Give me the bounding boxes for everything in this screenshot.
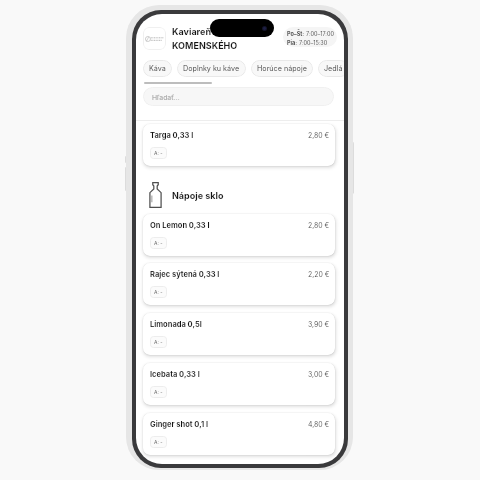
staticText: 3,00 € [308, 370, 330, 378]
button[interactable]: Káva [143, 60, 172, 77]
button[interactable]: Doplnky ku káve [177, 60, 246, 77]
button[interactable]: Ginger shot 0,1 l [143, 413, 335, 455]
staticText: Targa 0,33 l [150, 131, 194, 140]
staticText: Rajec sýtená 0,33 l [150, 270, 220, 279]
staticText: 2,80 € [308, 131, 330, 139]
staticText: Limonada 0,5l [150, 320, 202, 329]
staticText: KOMENSKÉHO [172, 40, 238, 51]
button[interactable]: Rajec sýtená 0,33 l [143, 263, 335, 305]
staticText: On Lemon 0,33 l [150, 221, 210, 230]
staticText: Po–Št: [287, 31, 306, 38]
button[interactable]: Targa 0,33 l [143, 124, 335, 166]
staticText: Icebata 0,33 l [150, 370, 200, 379]
button[interactable]: Logo [143, 27, 166, 50]
staticText: A: - [154, 439, 163, 445]
staticText: 3,90 € [308, 320, 330, 328]
staticText: A: - [154, 289, 163, 295]
staticText: Horúce nápoje [257, 64, 307, 73]
staticText: 2,80 € [308, 221, 330, 229]
button[interactable]: Horúce nápoje [251, 60, 313, 77]
staticText: Ginger shot 0,1 l [150, 420, 209, 429]
staticText: Pia: [287, 40, 299, 47]
staticText: Doplnky ku káve [183, 64, 240, 73]
staticText: A: - [154, 339, 163, 345]
button[interactable]: Hľadať... [143, 87, 334, 106]
button[interactable]: On Lemon 0,33 l [143, 214, 335, 256]
button[interactable]: Icebata 0,33 l [143, 363, 335, 405]
staticText: A: - [154, 150, 163, 156]
staticText: Hľadať... [152, 93, 180, 101]
staticText: Jedlá [324, 64, 343, 73]
staticText: 7:00–15:30 [299, 40, 328, 47]
staticText: A: - [154, 240, 163, 246]
button[interactable]: Jedlá [318, 60, 344, 77]
staticText: Nápoje sklo [172, 190, 224, 201]
staticText: 7:00–17:00 [306, 31, 334, 38]
staticText: 4,80 € [308, 420, 330, 428]
staticText: Káva [149, 64, 166, 73]
staticText: Kaviareň [172, 26, 212, 37]
staticText: A: - [154, 389, 163, 395]
staticText: 2,20 € [308, 270, 330, 278]
button[interactable]: Limonada 0,5l [143, 313, 335, 355]
